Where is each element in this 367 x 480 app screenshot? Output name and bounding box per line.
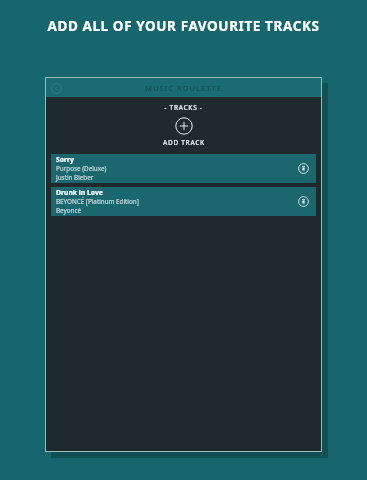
staticText: Purpose (Deluxe): [56, 164, 107, 173]
staticText: - TRACKS -: [46, 103, 321, 112]
button[interactable]: ADD TRACK: [46, 117, 321, 147]
staticText: MUSIC ROULETTE: [46, 83, 321, 93]
staticText: Justin Bieber: [56, 173, 94, 182]
button[interactable]: Sorry: [51, 154, 316, 183]
staticText: ADD TRACK: [163, 138, 205, 147]
staticText: Sorry: [56, 155, 74, 164]
button[interactable]: Drunk in Love: [51, 187, 316, 216]
button[interactable]: Back: [49, 81, 63, 95]
staticText: BEYONCÉ [Platinum Edition]: [56, 197, 139, 206]
button[interactable]: Delete track: [296, 161, 311, 176]
staticText: Drunk in Love: [56, 188, 103, 197]
button[interactable]: Delete track: [296, 194, 311, 209]
staticText: Beyoncé: [56, 206, 82, 215]
staticText: ADD ALL OF YOUR FAVOURITE TRACKS: [40, 17, 327, 35]
